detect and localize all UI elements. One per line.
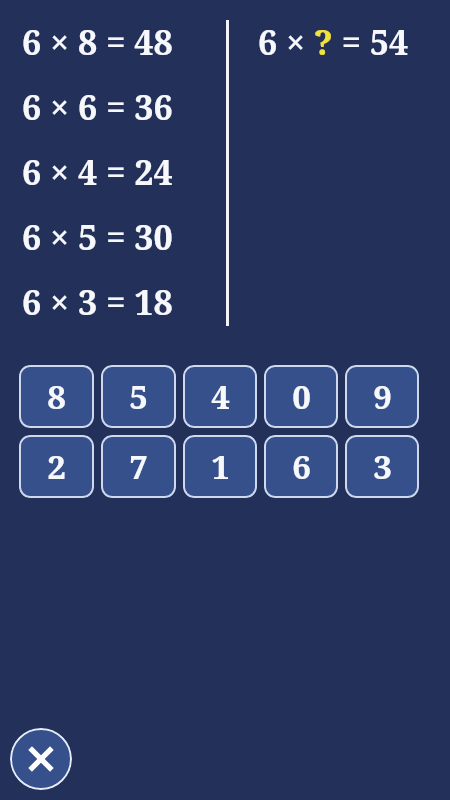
staticText: 7 — [129, 444, 148, 489]
button[interactable]: 4 — [183, 365, 257, 428]
staticText: 3 — [373, 444, 392, 489]
staticText: 0 — [292, 374, 311, 419]
button[interactable]: Close — [10, 728, 72, 790]
staticText: 9 — [373, 374, 392, 419]
button[interactable]: 1 — [183, 435, 257, 498]
staticText: 8 — [47, 374, 66, 419]
staticText: 6 × 3 = 18 — [22, 279, 173, 325]
button[interactable]: 5 — [101, 365, 176, 428]
button[interactable]: 9 — [345, 365, 419, 428]
button[interactable]: 3 — [345, 435, 419, 498]
button[interactable]: 7 — [101, 435, 176, 498]
staticText: 6 × ? = 54 — [258, 19, 409, 65]
staticText: 6 × 5 = 30 — [22, 214, 173, 260]
staticText: 6 × 6 = 36 — [22, 84, 173, 130]
staticText: 6 × 8 = 48 — [22, 19, 173, 65]
staticText: 6 — [292, 444, 311, 489]
staticText: 6 × 4 = 24 — [22, 149, 173, 195]
button[interactable]: 2 — [19, 435, 94, 498]
staticText: 4 — [211, 374, 230, 419]
button[interactable]: 8 — [19, 365, 94, 428]
button[interactable]: 6 — [264, 435, 338, 498]
button[interactable]: 0 — [264, 365, 338, 428]
staticText: 1 — [211, 444, 230, 489]
staticText: 2 — [47, 444, 66, 489]
staticText: 5 — [129, 374, 148, 419]
